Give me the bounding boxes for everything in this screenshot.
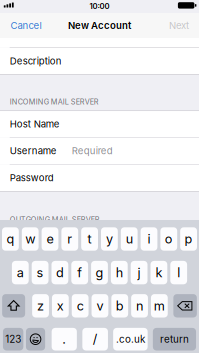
staticText: .: [62, 331, 66, 347]
staticText: y: [106, 231, 113, 247]
button[interactable]: j: [131, 261, 147, 284]
button[interactable]: return: [153, 328, 196, 350]
button[interactable]: s: [32, 261, 48, 284]
button[interactable]: l: [170, 261, 187, 284]
staticText: h: [116, 265, 123, 280]
staticText: i: [147, 231, 150, 247]
button[interactable]: .: [52, 328, 77, 350]
staticText: k: [155, 265, 162, 280]
button[interactable]: Username: [0, 138, 199, 164]
staticText: l: [177, 265, 180, 280]
staticText: s: [37, 265, 44, 280]
button[interactable]: w: [22, 227, 39, 251]
button[interactable]: z: [32, 294, 49, 317]
button[interactable]: b: [111, 294, 128, 317]
button[interactable]: t: [81, 227, 98, 251]
staticText: Description: [10, 55, 62, 67]
button[interactable]: v: [92, 294, 108, 317]
button[interactable]: Delete: [173, 294, 197, 317]
staticText: w: [25, 231, 35, 247]
staticText: Host Name: [10, 118, 60, 130]
staticText: f: [77, 265, 82, 280]
button[interactable]: a: [12, 261, 29, 284]
staticText: v: [96, 298, 103, 313]
button[interactable]: Description: [0, 48, 199, 74]
staticText: t: [88, 231, 92, 247]
staticText: .co.uk: [116, 333, 145, 345]
staticText: o: [165, 231, 173, 247]
button[interactable]: /: [82, 328, 108, 350]
button[interactable]: r: [61, 227, 78, 251]
staticText: e: [46, 231, 53, 247]
button[interactable]: Emoji: [26, 328, 45, 350]
button[interactable]: d: [51, 261, 68, 284]
button[interactable]: x: [52, 294, 69, 317]
button[interactable]: Next: [149, 13, 199, 38]
staticText: z: [37, 298, 44, 313]
staticText: b: [116, 298, 124, 313]
staticText: g: [95, 265, 103, 280]
button[interactable]: Password: [0, 165, 199, 191]
button[interactable]: f: [71, 261, 88, 284]
button[interactable]: q: [2, 227, 19, 251]
staticText: 123: [5, 333, 21, 345]
button[interactable]: e: [42, 227, 58, 251]
staticText: u: [126, 231, 133, 247]
staticText: Username: [10, 145, 57, 157]
staticText: /: [93, 331, 98, 347]
staticText: n: [136, 298, 143, 313]
staticText: r: [67, 231, 72, 247]
staticText: j: [138, 265, 141, 280]
staticText: New Account: [68, 20, 131, 31]
staticText: Password: [10, 172, 54, 184]
button[interactable]: n: [131, 294, 148, 317]
staticText: 10:00: [89, 1, 109, 11]
staticText: q: [6, 231, 14, 247]
staticText: c: [77, 298, 84, 313]
button[interactable]: p: [180, 227, 197, 251]
button[interactable]: u: [121, 227, 138, 251]
button[interactable]: 123: [3, 328, 23, 350]
staticText: Required: [72, 145, 113, 157]
staticText: x: [57, 298, 64, 313]
button[interactable]: i: [141, 227, 157, 251]
staticText: m: [154, 298, 165, 313]
button[interactable]: o: [160, 227, 177, 251]
button[interactable]: g: [91, 261, 108, 284]
button[interactable]: Host Name: [0, 111, 199, 137]
button[interactable]: k: [150, 261, 167, 284]
staticText: OUTGOING MAIL SERVER: [10, 215, 100, 224]
staticText: a: [17, 265, 24, 280]
button[interactable]: Cancel: [0, 13, 58, 38]
button[interactable]: y: [101, 227, 118, 251]
staticText: Next: [169, 20, 189, 31]
button[interactable]: Shift: [2, 294, 25, 317]
button[interactable]: h: [111, 261, 128, 284]
staticText: Cancel: [10, 20, 41, 31]
button[interactable]: .co.uk: [113, 328, 148, 350]
staticText: d: [56, 265, 64, 280]
staticText: return: [160, 333, 189, 345]
staticText: INCOMING MAIL SERVER: [10, 97, 99, 106]
button[interactable]: c: [72, 294, 89, 317]
button[interactable]: m: [151, 294, 168, 317]
staticText: p: [185, 231, 193, 247]
